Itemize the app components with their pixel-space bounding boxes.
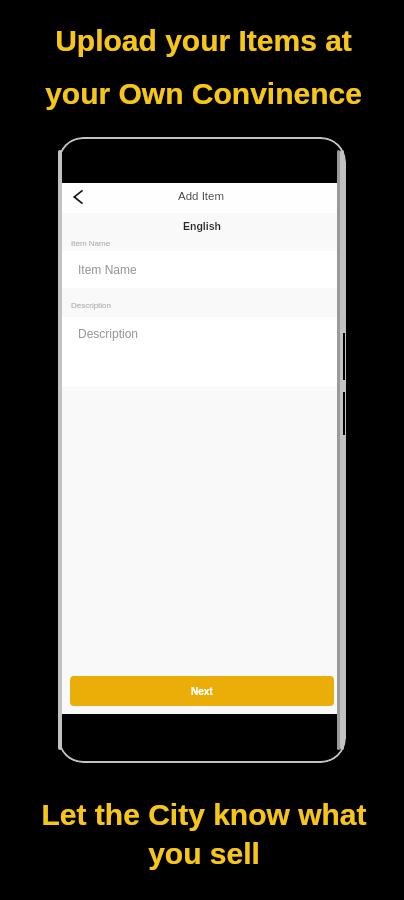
staticText: your Own Convinence — [45, 77, 362, 111]
button[interactable]: Back — [66, 185, 90, 209]
button[interactable]: Item Name — [62, 251, 337, 288]
staticText: Description — [78, 327, 139, 340]
staticText: English — [183, 220, 221, 232]
staticText: Item Name — [71, 239, 111, 248]
staticText: Add Item — [178, 190, 225, 203]
button[interactable]: Next — [70, 676, 334, 706]
staticText: Description — [71, 301, 112, 310]
staticText: Item Name — [78, 263, 137, 276]
staticText: Next — [191, 686, 213, 697]
button[interactable]: Description — [62, 317, 337, 386]
staticText: Let the City know what — [41, 798, 367, 832]
staticText: you sell — [148, 837, 260, 871]
staticText: Upload your Items at — [55, 24, 352, 58]
button[interactable]: English — [62, 213, 337, 233]
